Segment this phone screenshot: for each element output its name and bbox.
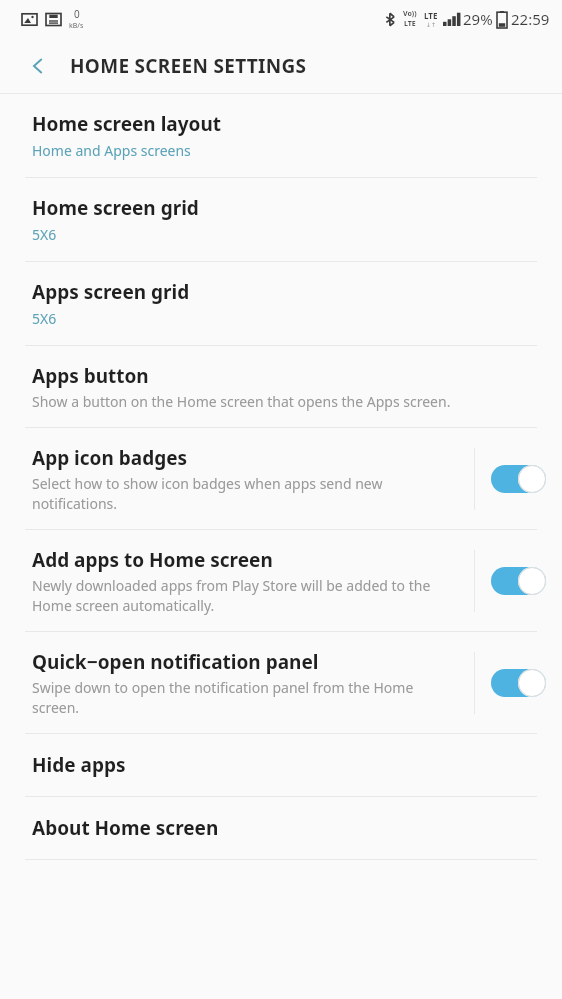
staticText: Home and Apps screens bbox=[32, 141, 191, 160]
button[interactable]: Quick−open notification panel bbox=[0, 632, 562, 733]
staticText: Vo)) bbox=[403, 9, 417, 19]
button[interactable]: About Home screen bbox=[0, 797, 562, 859]
button[interactable]: App icon badges bbox=[0, 428, 562, 529]
button[interactable]: Add apps to Home screen toggle, on bbox=[491, 567, 546, 595]
button[interactable]: Navigate up bbox=[18, 46, 58, 86]
staticText: kB/s bbox=[69, 21, 84, 31]
staticText: 0 bbox=[74, 7, 80, 21]
button[interactable]: Home screen layout bbox=[0, 94, 562, 177]
staticText: Apps button bbox=[32, 363, 149, 389]
staticText: Select how to show icon badges when apps… bbox=[32, 474, 462, 513]
staticText: HOME SCREEN SETTINGS bbox=[70, 53, 307, 79]
staticText: LTE bbox=[404, 19, 416, 29]
button[interactable]: Apps screen grid bbox=[0, 262, 562, 345]
button[interactable]: Hide apps bbox=[0, 734, 562, 796]
staticText: Newly downloaded apps from Play Store wi… bbox=[32, 576, 462, 615]
staticText: ↓↑ bbox=[426, 21, 437, 28]
button[interactable]: Home screen grid bbox=[0, 178, 562, 261]
staticText: About Home screen bbox=[32, 815, 219, 841]
staticText: Add apps to Home screen bbox=[32, 547, 273, 573]
button[interactable]: Apps button bbox=[0, 346, 562, 427]
staticText: Hide apps bbox=[32, 752, 126, 778]
button[interactable]: Quick−open notification panel toggle, on bbox=[491, 669, 546, 697]
staticText: 5X6 bbox=[32, 225, 57, 244]
staticText: 29% bbox=[463, 9, 493, 29]
staticText: Home screen grid bbox=[32, 195, 199, 221]
staticText: Quick−open notification panel bbox=[32, 649, 319, 675]
staticText: Home screen layout bbox=[32, 111, 222, 137]
staticText: Swipe down to open the notification pane… bbox=[32, 678, 462, 717]
staticText: Apps screen grid bbox=[32, 279, 190, 305]
staticText: 5X6 bbox=[32, 309, 57, 328]
button[interactable]: Add apps to Home screen bbox=[0, 530, 562, 631]
staticText: LTE bbox=[424, 10, 438, 21]
staticText: Show a button on the Home screen that op… bbox=[32, 392, 451, 411]
staticText: 22:59 bbox=[511, 9, 550, 29]
staticText: App icon badges bbox=[32, 445, 188, 471]
button[interactable]: App icon badges toggle, on bbox=[491, 465, 546, 493]
